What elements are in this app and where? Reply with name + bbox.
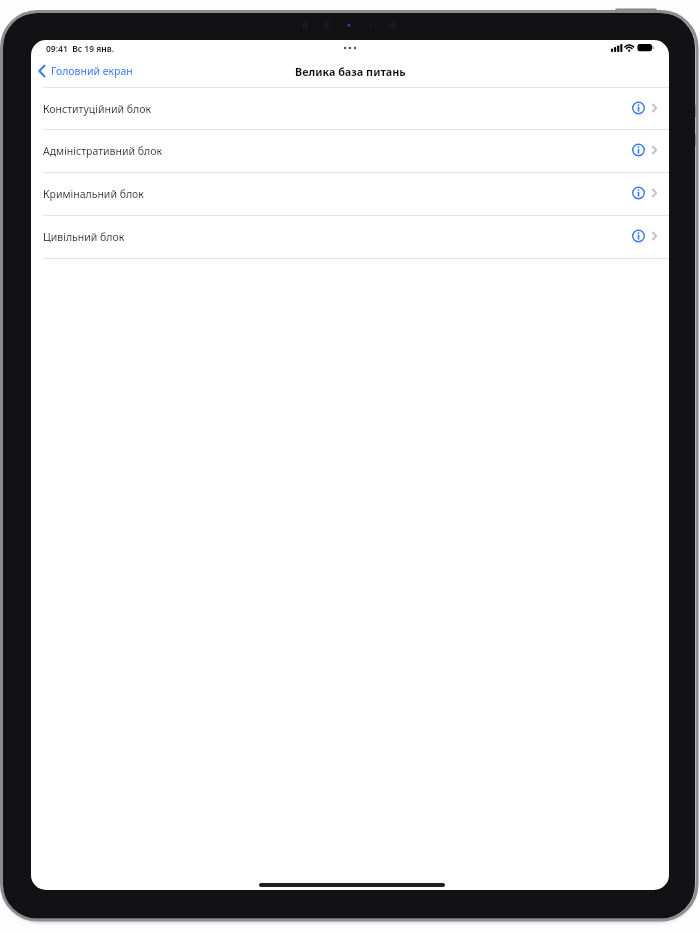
button[interactable]: Адміністративний блок [31,130,669,172]
staticText: Головний екран [51,64,133,78]
staticText: 09:41 Вс 19 янв. [46,43,115,55]
button[interactable]: Цивільний блок [31,216,669,258]
button[interactable]: Головний екран [34,60,162,82]
staticText: Конституційний блок [43,102,151,116]
staticText: Велика база питань [295,64,406,79]
staticText: Цивільний блок [43,230,125,244]
button[interactable]: Кримінальний блок [31,173,669,215]
staticText: Адміністративний блок [43,144,162,158]
staticText: Кримінальний блок [43,187,144,201]
button[interactable]: Конституційний блок [31,88,669,130]
